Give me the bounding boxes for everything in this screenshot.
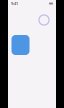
staticText: 9:41 bbox=[11, 1, 18, 6]
